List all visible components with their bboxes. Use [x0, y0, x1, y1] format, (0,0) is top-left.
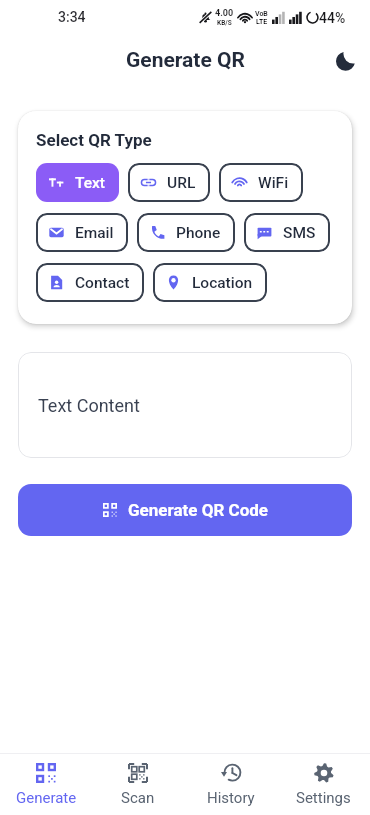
- button[interactable]: Settings: [277, 754, 370, 815]
- staticText: Email: [75, 224, 114, 242]
- staticText: VoB: [255, 10, 268, 18]
- staticText: WiFi: [258, 174, 289, 192]
- button[interactable]: Location: [153, 263, 267, 302]
- staticText: History: [207, 789, 255, 807]
- button[interactable]: Contact: [36, 263, 144, 302]
- staticText: Location: [192, 274, 253, 292]
- staticText: Select QR Type: [36, 130, 152, 150]
- button[interactable]: Text: [36, 163, 119, 202]
- staticText: SMS: [283, 224, 316, 242]
- button[interactable]: Generate QR Code: [18, 484, 352, 536]
- staticText: Text: [75, 174, 105, 192]
- staticText: Settings: [296, 789, 351, 807]
- staticText: URL: [167, 174, 196, 192]
- staticText: 3:34: [58, 9, 86, 25]
- staticText: 4.00: [215, 8, 234, 19]
- staticText: Text Content: [38, 395, 140, 416]
- staticText: Generate QR Code: [128, 500, 268, 520]
- button[interactable]: SMS: [244, 213, 330, 252]
- button[interactable]: Phone: [137, 213, 235, 252]
- staticText: 44%: [319, 10, 346, 26]
- button[interactable]: Toggle dark mode: [328, 43, 362, 77]
- staticText: Generate: [16, 789, 77, 807]
- button[interactable]: Generate: [0, 754, 92, 815]
- button[interactable]: Text Content: [18, 352, 352, 458]
- staticText: LTE: [256, 18, 268, 26]
- staticText: Generate QR: [126, 48, 245, 73]
- button[interactable]: Email: [36, 213, 128, 252]
- staticText: KB/S: [217, 19, 232, 27]
- button[interactable]: WiFi: [219, 163, 303, 202]
- button[interactable]: History: [184, 754, 277, 815]
- button[interactable]: URL: [128, 163, 210, 202]
- staticText: Phone: [176, 224, 221, 242]
- staticText: Contact: [75, 274, 130, 292]
- staticText: Scan: [121, 789, 155, 807]
- button[interactable]: Scan: [92, 754, 184, 815]
